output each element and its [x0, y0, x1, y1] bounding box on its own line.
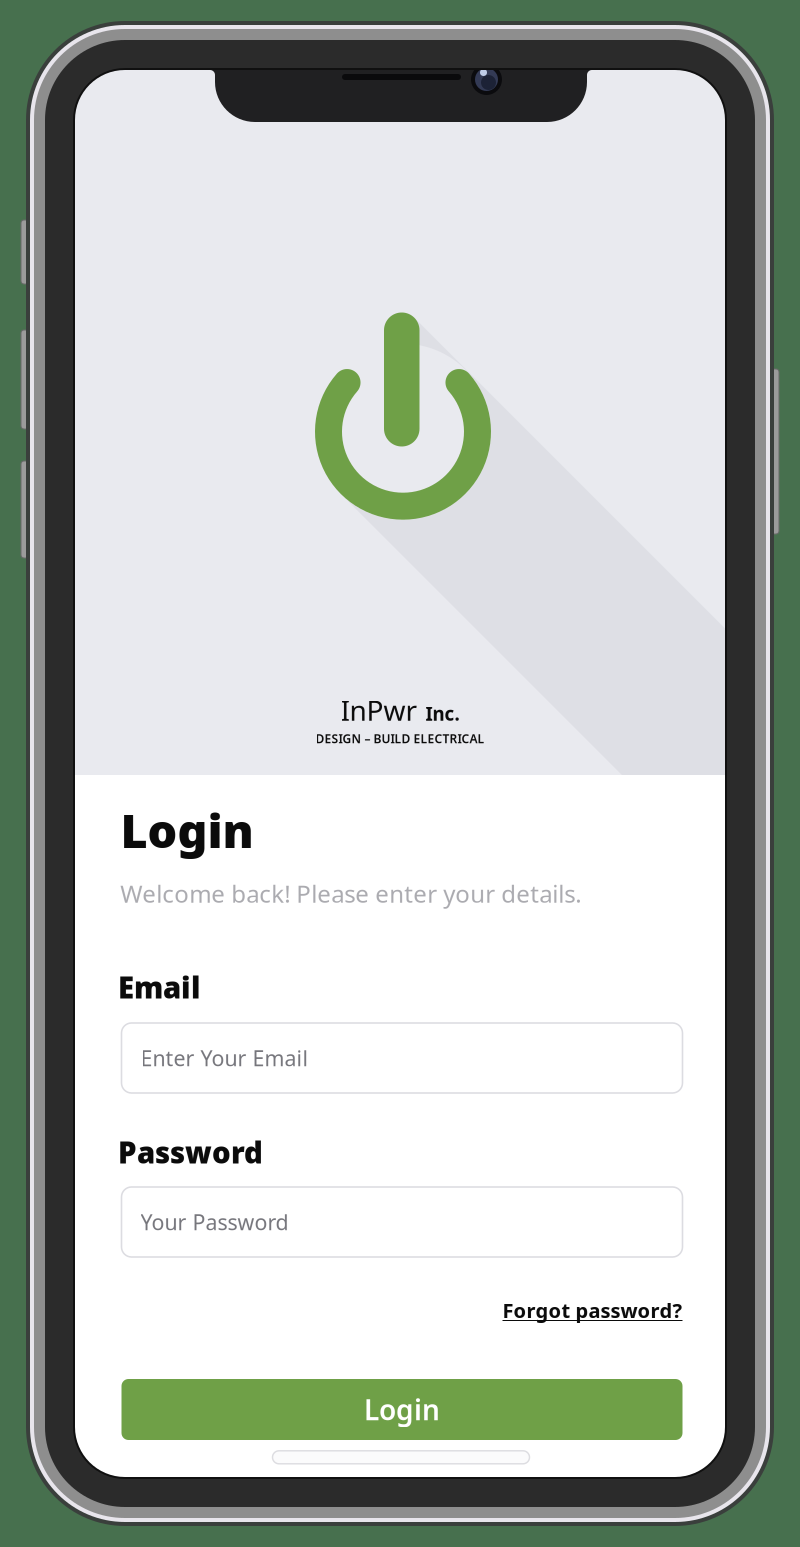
staticText: Enter Your Email: [140, 1044, 308, 1072]
staticText: Email: [118, 968, 200, 1007]
staticText: Login: [364, 1391, 440, 1428]
staticText: Password: [118, 1133, 263, 1172]
button[interactable]: Login: [121, 1379, 682, 1440]
staticText: Inc.: [425, 701, 459, 726]
staticText: Forgot password?: [502, 1297, 682, 1323]
staticText: DESIGN – BUILD ELECTRICAL: [315, 731, 484, 746]
staticText: Login: [120, 799, 253, 861]
staticText: Your Password: [140, 1208, 288, 1236]
staticText: Welcome back! Please enter your details.: [120, 878, 581, 909]
button[interactable]: Forgot password?: [75, 775, 725, 1477]
staticText: InPwr: [340, 691, 417, 729]
